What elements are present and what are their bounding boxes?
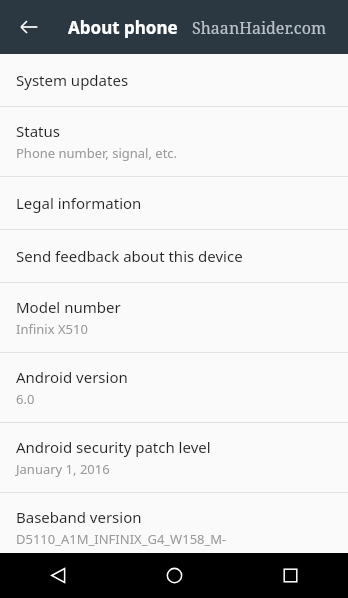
- staticText: Model number: [16, 297, 121, 317]
- staticText: Android security patch level: [16, 437, 211, 457]
- staticText: About phone: [68, 16, 178, 39]
- button[interactable]: Android version: [0, 353, 348, 422]
- button[interactable]: Recent apps: [232, 553, 348, 598]
- button[interactable]: Back: [13, 11, 45, 43]
- button[interactable]: Baseband version: [0, 493, 348, 562]
- button[interactable]: Android security patch level: [0, 423, 348, 492]
- staticText: Phone number, signal, etc.: [16, 144, 178, 162]
- staticText: Legal information: [16, 193, 142, 213]
- staticText: 6.0: [16, 390, 35, 408]
- staticText: January 1, 2016: [16, 460, 110, 478]
- button[interactable]: Legal information: [0, 177, 348, 229]
- button[interactable]: Send feedback about this device: [0, 230, 348, 282]
- staticText: Android version: [16, 367, 128, 387]
- staticText: System updates: [16, 70, 129, 90]
- button[interactable]: Home: [116, 553, 232, 598]
- staticText: D5110_A1M_INFINIX_G4_W158_M-: [16, 530, 227, 548]
- staticText: Baseband version: [16, 507, 142, 527]
- staticText: ShaanHaider.com: [192, 17, 327, 39]
- staticText: Infinix X510: [16, 320, 88, 338]
- button[interactable]: Status: [0, 107, 348, 176]
- button[interactable]: System updates: [0, 54, 348, 106]
- staticText: Status: [16, 121, 60, 141]
- staticText: Send feedback about this device: [16, 246, 243, 266]
- button[interactable]: Model number: [0, 283, 348, 352]
- button[interactable]: Back: [0, 553, 116, 598]
